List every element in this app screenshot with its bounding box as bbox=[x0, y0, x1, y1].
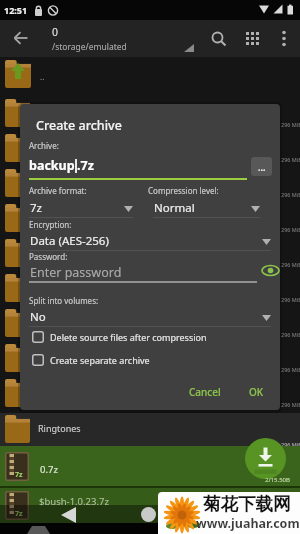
staticText: Normal bbox=[154, 200, 195, 216]
button[interactable]: Normal bbox=[153, 200, 260, 218]
button[interactable] bbox=[0, 413, 300, 446]
staticText: Archive format: bbox=[29, 185, 87, 196]
button[interactable] bbox=[0, 446, 300, 486]
button[interactable] bbox=[211, 31, 227, 47]
staticText: Split into volumes: bbox=[29, 295, 99, 306]
staticText: Archive: bbox=[29, 140, 59, 151]
staticText: 菊花下载网 bbox=[203, 493, 291, 515]
staticText: Enter password bbox=[30, 264, 122, 281]
staticText: Create separate archive bbox=[50, 354, 150, 366]
button[interactable] bbox=[262, 264, 279, 277]
staticText: 296 MiB bbox=[281, 296, 300, 303]
staticText: /storage/emulated bbox=[52, 41, 127, 53]
staticText: Password: bbox=[29, 251, 68, 262]
staticText: 296 MiB bbox=[281, 121, 300, 128]
staticText: Delete source files after compression bbox=[50, 331, 207, 343]
button[interactable] bbox=[281, 30, 287, 47]
button[interactable]: 7z bbox=[29, 200, 133, 218]
button[interactable]: Delete source files after compression bbox=[32, 331, 207, 343]
button[interactable]: backup bbox=[29, 157, 94, 174]
button[interactable]: No bbox=[29, 309, 271, 327]
staticText: 0.7z bbox=[40, 463, 58, 476]
staticText: Ringtones bbox=[38, 422, 81, 434]
staticText: 2/15.50B bbox=[265, 476, 290, 484]
staticText: .7z bbox=[77, 157, 94, 174]
staticText: Encryption: bbox=[29, 219, 72, 230]
staticText: 7z bbox=[30, 200, 42, 216]
staticText: No bbox=[30, 309, 46, 325]
staticText: Cancel bbox=[189, 385, 221, 399]
button[interactable] bbox=[29, 261, 257, 283]
staticText: 296 MiB bbox=[281, 226, 300, 233]
staticText: 12:51 bbox=[4, 4, 28, 16]
button[interactable] bbox=[0, 488, 300, 523]
button[interactable] bbox=[13, 31, 29, 45]
button[interactable]: Cancel bbox=[180, 383, 230, 401]
staticText: 296 MiB bbox=[281, 331, 300, 338]
staticText: 7z bbox=[15, 509, 23, 519]
staticText: 296 MiB bbox=[281, 191, 300, 198]
staticText: 7z bbox=[15, 470, 23, 480]
staticText: Data (AES-256) bbox=[30, 233, 109, 249]
button[interactable]: Data (AES-256) bbox=[29, 233, 271, 251]
button[interactable] bbox=[141, 507, 156, 522]
button[interactable]: Create separate archive bbox=[32, 354, 150, 366]
staticText: 296 MiB bbox=[281, 366, 300, 373]
button[interactable] bbox=[60, 507, 76, 523]
button[interactable] bbox=[44, 21, 194, 56]
staticText: 296 MiB bbox=[281, 156, 300, 163]
staticText: Create archive bbox=[36, 117, 122, 134]
button[interactable] bbox=[245, 438, 286, 479]
staticText: backup bbox=[29, 157, 75, 174]
staticText: .. bbox=[40, 71, 45, 82]
staticText: 296 MiB bbox=[281, 441, 300, 448]
staticText: $bush-1.0.23.7z bbox=[39, 495, 109, 508]
staticText: Compression level: bbox=[148, 185, 219, 196]
staticText: 296 MiB bbox=[281, 401, 300, 408]
staticText: 0 bbox=[52, 25, 59, 39]
staticText: 296 MiB bbox=[281, 261, 300, 268]
button[interactable] bbox=[245, 31, 260, 46]
button[interactable]: ... bbox=[251, 157, 272, 176]
button[interactable]: 菊花下载网 bbox=[158, 492, 300, 534]
button[interactable]: OK bbox=[236, 383, 276, 401]
staticText: www.juahar.com bbox=[196, 515, 300, 532]
staticText: ... bbox=[258, 161, 266, 173]
staticText: OK bbox=[249, 385, 264, 399]
